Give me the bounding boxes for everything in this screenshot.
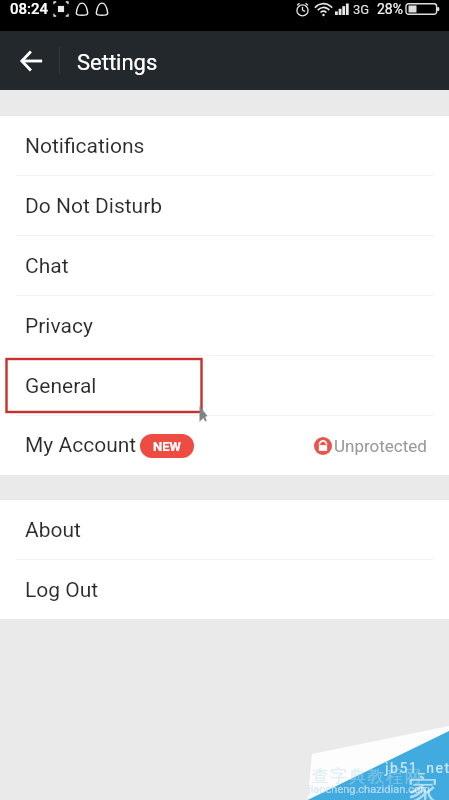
button[interactable]: My Account: [0, 416, 449, 475]
staticText: jiaocheng.chazidian.com: [308, 783, 430, 796]
staticText: Log Out: [25, 578, 99, 603]
button[interactable]: Privacy: [0, 296, 449, 355]
staticText: About: [25, 518, 81, 543]
staticText: 查字典教程网: [311, 766, 422, 787]
staticText: 28%: [377, 1, 403, 17]
button[interactable]: Notifications: [0, 116, 449, 175]
button[interactable]: Back: [12, 41, 52, 81]
staticText: 08:24: [10, 0, 49, 18]
staticText: Privacy: [25, 314, 93, 339]
button[interactable]: About: [0, 500, 449, 559]
staticText: Settings: [77, 50, 158, 76]
staticText: Do Not Disturb: [25, 194, 163, 219]
staticText: NEW: [153, 439, 181, 454]
button[interactable]: Do Not Disturb: [0, 176, 449, 235]
staticText: Unprotected: [334, 436, 427, 456]
staticText: 3G: [353, 2, 370, 17]
button[interactable]: General: [0, 356, 449, 415]
staticText: General: [25, 374, 97, 399]
staticText: Chat: [25, 254, 69, 279]
button[interactable]: Chat: [0, 236, 449, 295]
staticText: 家: [408, 772, 438, 800]
button[interactable]: Log Out: [0, 560, 449, 619]
staticText: jb51_net: [385, 760, 449, 776]
staticText: Notifications: [25, 134, 145, 159]
staticText: My Account: [25, 433, 137, 458]
